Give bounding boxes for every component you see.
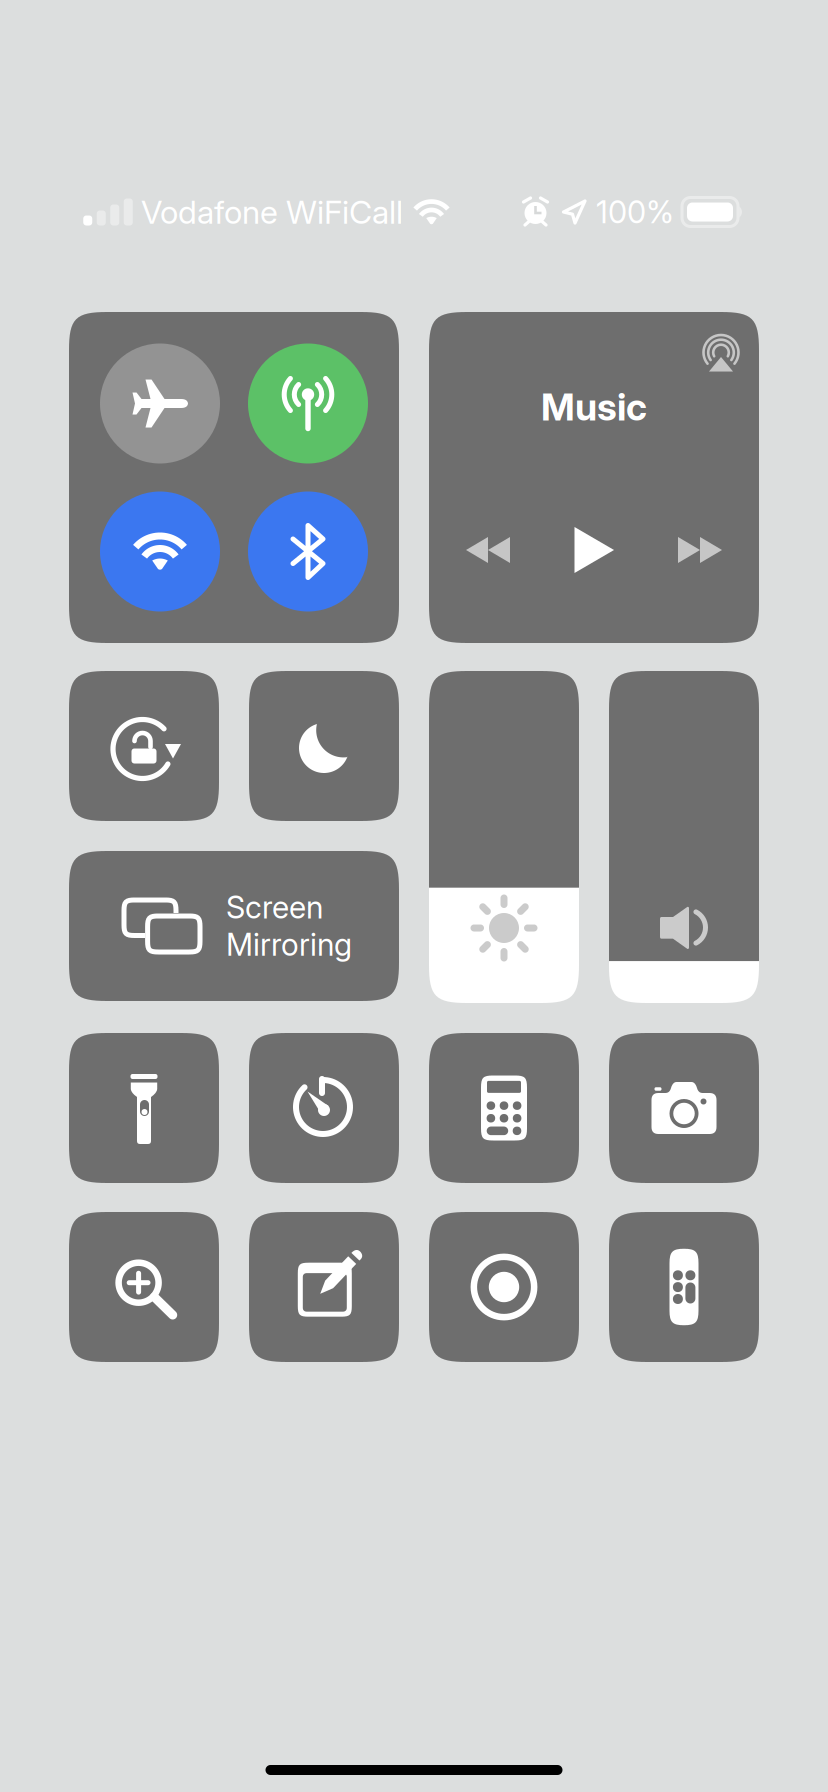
staticText: Screen Mirroring (226, 889, 352, 963)
button[interactable]: Magnifier (69, 1212, 219, 1362)
button[interactable]: Calculator (429, 1033, 579, 1183)
button[interactable]: AirPlay (700, 334, 742, 376)
staticText: Vodafone WiFiCall (141, 193, 403, 231)
button[interactable]: Screen Mirroring (69, 851, 399, 1001)
button[interactable]: Wi-Fi (100, 491, 220, 611)
button[interactable]: Cellular Data (248, 343, 368, 463)
button[interactable]: Camera (609, 1033, 759, 1183)
button[interactable]: Timer (249, 1033, 399, 1183)
button[interactable]: Volume (609, 671, 759, 1003)
button[interactable]: Flashlight (69, 1033, 219, 1183)
button[interactable]: Play (567, 522, 621, 578)
staticText: Music (541, 384, 647, 430)
button[interactable]: Notes (249, 1212, 399, 1362)
button[interactable]: Brightness (429, 671, 579, 1003)
button[interactable]: Previous Track (457, 522, 519, 578)
button[interactable]: Apple TV Remote (609, 1212, 759, 1362)
button[interactable]: Next Track (669, 522, 731, 578)
button[interactable]: Bluetooth (248, 491, 368, 611)
button[interactable]: Do Not Disturb (249, 671, 399, 821)
staticText: 100% (596, 193, 674, 230)
button[interactable]: Airplane Mode (100, 343, 220, 463)
button[interactable]: Rotation Lock (69, 671, 219, 821)
button[interactable]: Screen Recording (429, 1212, 579, 1362)
